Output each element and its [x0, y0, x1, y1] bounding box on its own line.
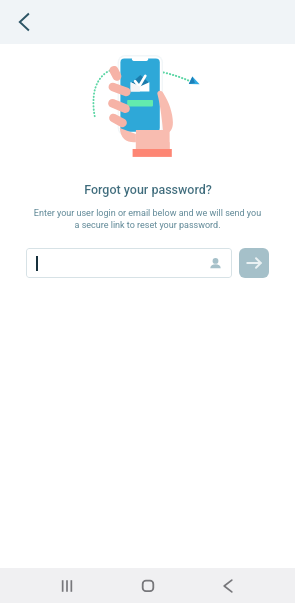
button[interactable]: Home: [121, 568, 174, 603]
button[interactable]: Submit: [239, 248, 269, 278]
button[interactable]: Back: [201, 568, 254, 603]
button[interactable]: Recents: [40, 568, 93, 603]
button[interactable]: [26, 248, 232, 278]
staticText: Forgot your password?: [84, 182, 212, 197]
staticText: Enter your user login or email below and…: [31, 208, 264, 230]
button[interactable]: Back: [6, 4, 42, 40]
